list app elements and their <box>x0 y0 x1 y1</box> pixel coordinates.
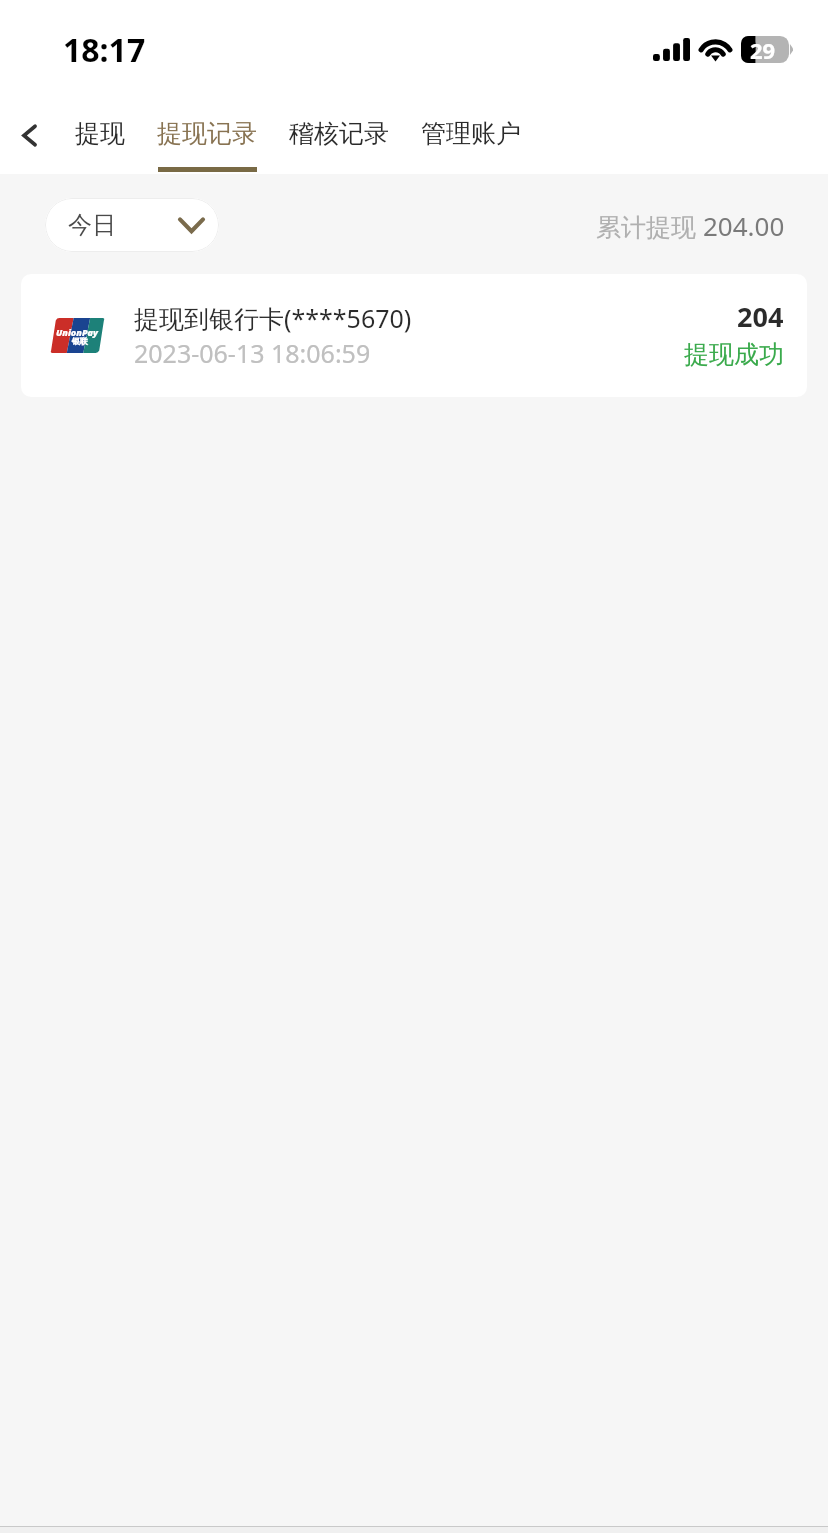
staticText: 累计提现 <box>596 209 703 243</box>
staticText: 提现记录 <box>157 118 257 149</box>
staticText: 提现到银行卡(****5670) <box>134 301 412 335</box>
staticText: 提现 <box>75 118 125 149</box>
staticText: 2023-06-13 18:06:59 <box>134 336 371 370</box>
button[interactable]: UnionPay <box>21 274 807 397</box>
staticText: 管理账户 <box>421 118 521 149</box>
staticText: 银联 <box>72 336 88 346</box>
staticText: 今日 <box>68 210 116 240</box>
staticText: 204 <box>737 298 784 335</box>
button[interactable]: 管理账户 <box>405 96 537 174</box>
staticText: 29 <box>750 35 776 62</box>
staticText: 18:17 <box>63 28 146 72</box>
staticText: 提现成功 <box>684 339 784 370</box>
staticText: 稽核记录 <box>289 118 389 149</box>
button[interactable]: 提现 <box>58 96 141 174</box>
staticText: 204.00 <box>703 208 785 243</box>
button[interactable]: 提现记录 <box>141 96 273 174</box>
button[interactable]: Back <box>0 96 58 174</box>
button[interactable]: 今日 <box>45 198 219 252</box>
button[interactable]: 稽核记录 <box>273 96 405 174</box>
staticText: UnionPay <box>56 326 98 338</box>
